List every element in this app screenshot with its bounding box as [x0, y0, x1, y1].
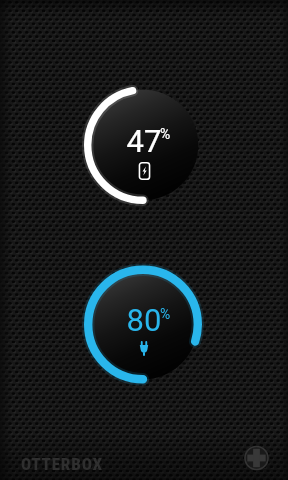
button[interactable]: Add widget — [244, 445, 272, 473]
button[interactable]: OtterBox — [20, 452, 112, 467]
button[interactable]: Phone battery 47 percent, charging — [84, 86, 202, 204]
button[interactable]: Case battery 80 percent, plugged in — [84, 265, 202, 383]
